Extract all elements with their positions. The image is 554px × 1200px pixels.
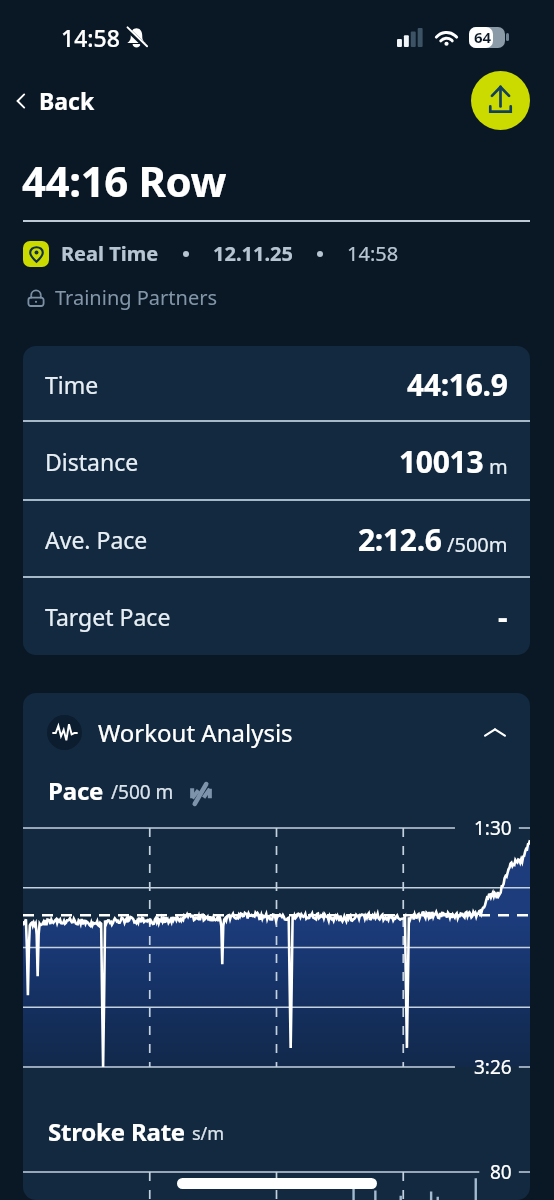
staticText: 12.11.25 <box>213 240 293 267</box>
staticText: Real Time <box>61 240 159 267</box>
button[interactable]: Back <box>5 77 101 124</box>
staticText: 64 <box>474 27 492 47</box>
staticText: Time <box>45 369 99 400</box>
staticText: 3:26 <box>474 1054 512 1080</box>
staticText: Workout Analysis <box>98 716 293 749</box>
staticText: Back <box>39 85 95 116</box>
staticText: /500m <box>447 531 508 558</box>
staticText: Training Partners <box>55 284 218 311</box>
staticText: /500 m <box>111 779 174 805</box>
staticText: m <box>489 453 508 480</box>
staticText: 10013 <box>399 441 484 482</box>
staticText: - <box>498 596 508 637</box>
staticText: s/m <box>192 1121 225 1146</box>
staticText: 1:30 <box>474 815 512 841</box>
staticText: 14:58 <box>347 240 399 267</box>
button[interactable]: Share <box>471 71 530 130</box>
button[interactable]: Collapse <box>482 720 508 746</box>
staticText: Distance <box>45 446 139 477</box>
staticText: Ave. Pace <box>45 524 148 555</box>
staticText: 14:58 <box>61 22 120 53</box>
staticText: Stroke Rate <box>48 1115 185 1148</box>
staticText: 80 <box>490 1159 512 1185</box>
staticText: 44:16.9 <box>407 364 508 405</box>
staticText: 44:16 Row <box>22 152 227 209</box>
staticText: Target Pace <box>45 601 171 632</box>
staticText: Pace <box>48 774 104 807</box>
staticText: 2:12.6 <box>358 519 442 560</box>
